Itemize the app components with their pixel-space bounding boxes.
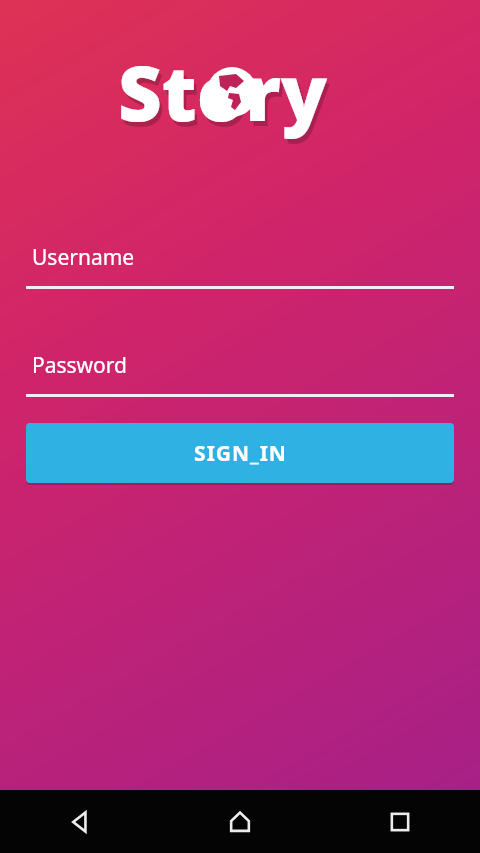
button[interactable]: Username [26,243,454,289]
staticText: Password [32,351,127,380]
staticText: SIGN_IN [194,439,287,468]
button[interactable]: Recent apps [320,790,480,853]
staticText: Story [121,45,331,149]
staticText: Username [32,243,135,272]
staticText: Story [118,40,328,144]
button[interactable]: SIGN_IN [26,423,454,483]
button[interactable]: Home [160,790,320,853]
button[interactable]: Back [0,790,160,853]
button[interactable]: Password [26,351,454,397]
